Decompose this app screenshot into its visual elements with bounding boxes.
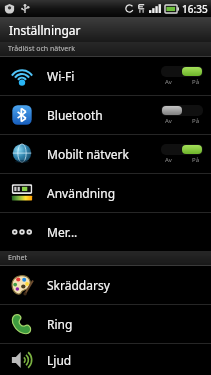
- button[interactable]: Skräddarsy: [0, 266, 211, 304]
- staticText: Ljud: [47, 352, 72, 368]
- staticText: På: [192, 78, 199, 86]
- button[interactable]: Av: [159, 105, 205, 125]
- button[interactable]: På: [159, 144, 205, 164]
- staticText: Bluetooth: [47, 107, 103, 123]
- button[interactable]: Ring: [0, 305, 211, 343]
- other: Ring: [11, 313, 33, 335]
- staticText: Av: [165, 156, 172, 164]
- staticText: Av: [165, 117, 172, 125]
- other: Skräddarsy: [11, 274, 33, 296]
- other: Mer: [11, 221, 33, 243]
- staticText: Ring: [47, 316, 73, 332]
- staticText: Trådlöst och nätverk: [8, 44, 75, 54]
- button[interactable]: Bluetooth: [0, 96, 211, 134]
- staticText: Mer...: [47, 224, 78, 240]
- button[interactable]: Wi-Fi: [0, 57, 211, 95]
- staticText: 16:35: [182, 2, 208, 16]
- other: Ljud: [11, 349, 33, 371]
- staticText: Skräddarsy: [47, 277, 110, 293]
- staticText: Mobilt nätverk: [47, 146, 129, 162]
- staticText: Enhet: [8, 253, 28, 263]
- staticText: Inställningar: [9, 22, 81, 38]
- other: Wi-Fi: [11, 65, 33, 87]
- button[interactable]: Ljud: [0, 344, 211, 375]
- staticText: Av: [165, 78, 172, 86]
- other: Användning: [11, 182, 33, 204]
- staticText: På: [192, 117, 199, 125]
- button[interactable]: Mobilt nätverk: [0, 135, 211, 173]
- staticText: Användning: [47, 185, 116, 201]
- button[interactable]: Användning: [0, 174, 211, 212]
- staticText: Wi-Fi: [47, 68, 75, 84]
- other: Mobilt nätverk: [11, 143, 33, 165]
- other: Bluetooth: [11, 104, 33, 126]
- staticText: På: [192, 156, 199, 164]
- button[interactable]: Mer: [0, 213, 211, 251]
- button[interactable]: På: [159, 66, 205, 86]
